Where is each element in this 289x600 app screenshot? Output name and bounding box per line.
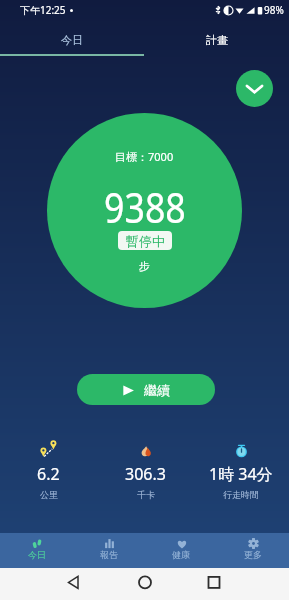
staticText: 暫停中 <box>126 233 165 249</box>
staticText: 306.3 <box>125 463 166 485</box>
button[interactable]: 今日 <box>0 20 144 55</box>
button[interactable]: 繼續 <box>77 374 215 405</box>
staticText: 下午12:25 <box>20 3 66 17</box>
staticText: 步 <box>139 259 150 273</box>
button[interactable]: 健康 <box>145 533 217 568</box>
button[interactable]: 報告 <box>73 533 145 568</box>
staticText: 更多 <box>244 549 262 560</box>
staticText: 1時 34分 <box>209 463 273 485</box>
button[interactable]: Expand <box>236 70 273 107</box>
staticText: 報告 <box>100 549 118 560</box>
staticText: 6.2 <box>37 463 60 485</box>
staticText: 9388 <box>104 179 186 235</box>
staticText: 千卡 <box>137 489 155 500</box>
staticText: 繼續 <box>144 382 170 398</box>
staticText: 98% <box>264 3 284 17</box>
staticText: 公里 <box>40 489 58 500</box>
button[interactable]: 更多 <box>217 533 289 568</box>
staticText: 今日 <box>61 33 83 47</box>
staticText: 今日 <box>28 549 46 560</box>
button[interactable]: 今日 <box>0 533 73 568</box>
button[interactable]: 計畫 <box>144 20 289 55</box>
staticText: 目標：7000 <box>115 149 174 164</box>
staticText: 行走時間 <box>223 489 259 500</box>
staticText: 健康 <box>172 549 190 560</box>
staticText: 計畫 <box>206 33 228 47</box>
